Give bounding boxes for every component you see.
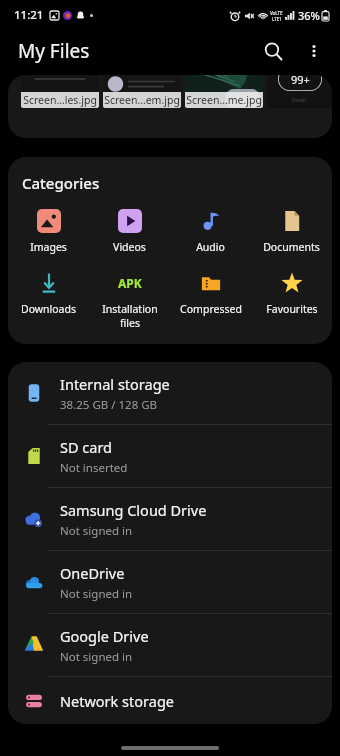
button[interactable]: Internal storage bbox=[8, 362, 332, 424]
staticText: Screen…les.jpg bbox=[23, 93, 97, 107]
staticText: Screen…em.jpg bbox=[104, 93, 180, 107]
staticText: Not signed in bbox=[60, 586, 133, 602]
staticText: Videos bbox=[113, 240, 146, 254]
staticText: Categories bbox=[22, 173, 100, 193]
button[interactable]: Network storage bbox=[8, 677, 332, 724]
staticText: 99+ bbox=[291, 75, 310, 87]
button[interactable]: Screen…em.jpg bbox=[103, 75, 181, 108]
staticText: APK bbox=[118, 275, 142, 291]
staticText: OneDrive bbox=[60, 563, 125, 583]
button[interactable]: OneDrive bbox=[8, 551, 332, 613]
staticText: 38.25 GB / 128 GB bbox=[60, 397, 158, 413]
button[interactable]: Videos bbox=[89, 206, 170, 256]
staticText: SD card bbox=[60, 437, 113, 457]
button[interactable]: Images bbox=[8, 206, 89, 256]
staticText: Images bbox=[30, 240, 67, 254]
button[interactable]: Audio bbox=[170, 206, 251, 256]
staticText: 36% bbox=[298, 8, 320, 23]
staticText: VoLTE bbox=[270, 10, 283, 16]
button[interactable]: 99+ bbox=[267, 75, 332, 108]
staticText: Not inserted bbox=[60, 460, 128, 476]
staticText: Downloads bbox=[21, 302, 76, 316]
button[interactable]: Screen…les.jpg bbox=[21, 75, 99, 108]
staticText: 11:21 bbox=[14, 7, 44, 23]
button[interactable]: APK bbox=[89, 268, 170, 332]
staticText: Internal storage bbox=[60, 374, 170, 394]
staticText: Screen…me.jpg bbox=[186, 93, 262, 107]
button[interactable]: Samsung Cloud Drive bbox=[8, 488, 332, 550]
button[interactable]: Screen…les.jpg bbox=[8, 75, 332, 138]
staticText: Documents bbox=[263, 240, 320, 254]
button[interactable]: Search bbox=[252, 30, 294, 72]
staticText: Not signed in bbox=[60, 523, 133, 539]
staticText: Samsung Cloud Drive bbox=[60, 500, 207, 520]
staticText: Google Drive bbox=[60, 626, 149, 646]
staticText: My Files bbox=[18, 38, 90, 64]
button[interactable]: Favourites bbox=[251, 268, 332, 318]
button[interactable]: Documents bbox=[251, 206, 332, 256]
staticText: Not signed in bbox=[60, 649, 133, 665]
staticText: Compressed bbox=[180, 302, 242, 316]
button[interactable]: Screen…me.jpg bbox=[185, 75, 263, 108]
button[interactable]: Downloads bbox=[8, 268, 89, 318]
button[interactable]: More options bbox=[294, 31, 334, 71]
button[interactable]: Google Drive bbox=[8, 614, 332, 676]
staticText: Network storage bbox=[60, 691, 174, 711]
staticText: Installation files bbox=[102, 302, 158, 330]
staticText: Favourites bbox=[266, 302, 318, 316]
button[interactable]: SD card bbox=[8, 425, 332, 487]
staticText: Audio bbox=[196, 240, 225, 254]
staticText: LTE1 bbox=[272, 16, 282, 22]
button[interactable]: Compressed bbox=[170, 268, 251, 318]
staticText: Details bbox=[292, 97, 307, 103]
